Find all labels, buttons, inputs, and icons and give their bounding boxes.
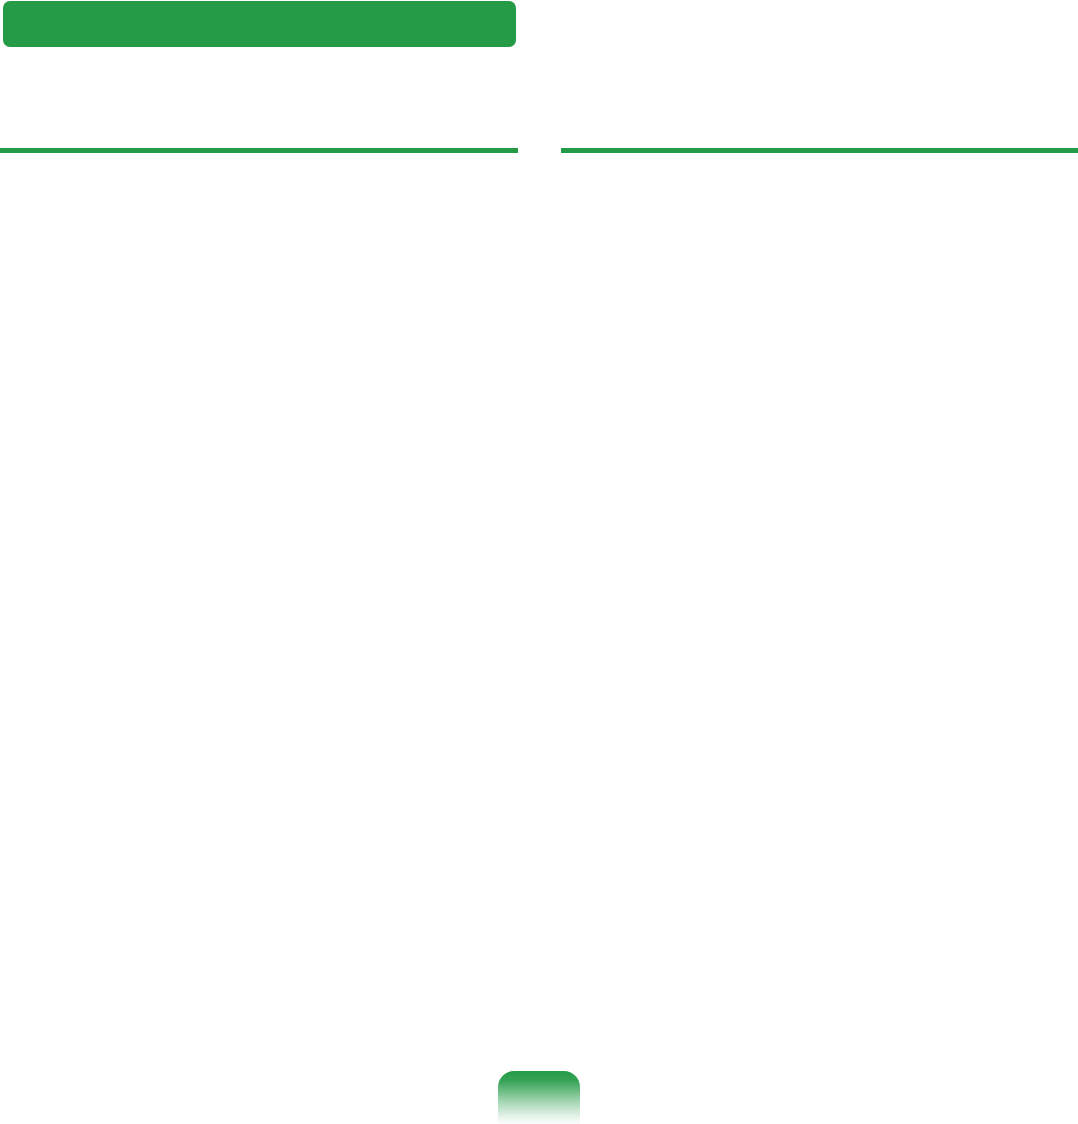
- button[interactable]: Header banner: [3, 1, 516, 47]
- button[interactable]: Scroll indicator: [498, 1071, 580, 1124]
